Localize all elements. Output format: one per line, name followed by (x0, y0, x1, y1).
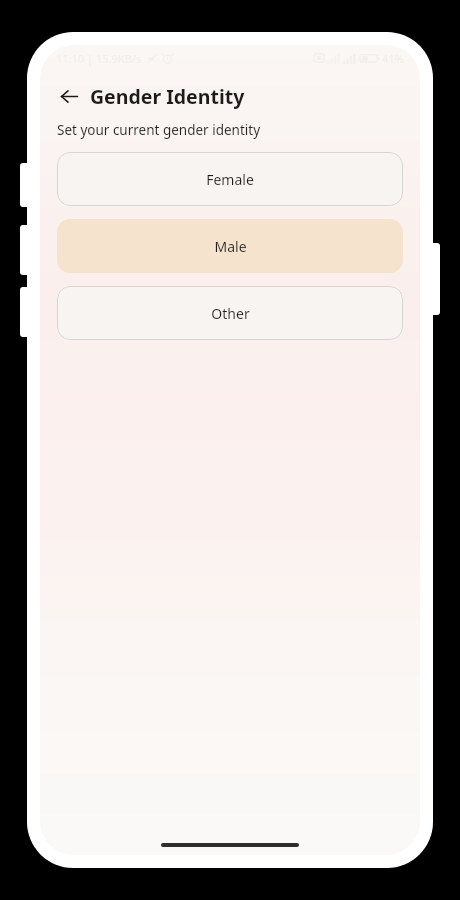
staticText: 41% (382, 51, 404, 66)
staticText: Male (214, 237, 247, 256)
staticText: Set your current gender identity (57, 121, 261, 139)
button[interactable]: Back (54, 81, 84, 111)
staticText: Gender Identity (90, 83, 245, 110)
button[interactable]: Other (57, 286, 403, 340)
button[interactable]: Female (57, 152, 403, 206)
staticText: Female (206, 170, 254, 189)
staticText: 11:10 | 15.9KB/s (56, 51, 142, 66)
button[interactable]: Male (57, 219, 403, 273)
staticText: Other (211, 304, 250, 323)
